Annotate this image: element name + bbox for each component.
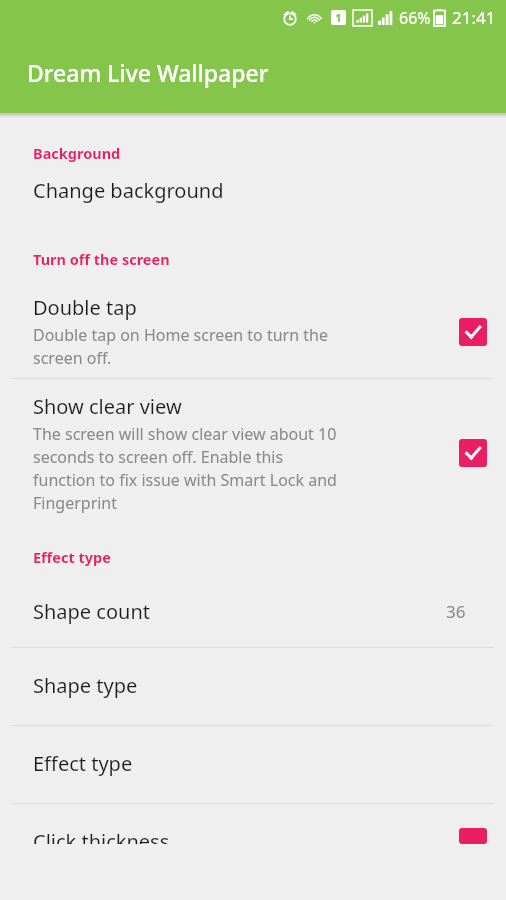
staticText: Change background (33, 177, 224, 204)
staticText: 66% (399, 7, 431, 29)
staticText: Shape count (33, 598, 150, 625)
staticText: Double tap on Home screen to turn the sc… (33, 324, 328, 369)
staticText: Show clear view (33, 393, 182, 420)
button[interactable]: Shape type (0, 648, 506, 725)
staticText: The screen will show clear view about 10… (33, 423, 337, 514)
staticText: 36 (446, 600, 466, 623)
staticText: Click thickness (33, 828, 459, 844)
staticText: Effect type (33, 547, 111, 567)
other: Toggle setting (459, 828, 487, 844)
button[interactable]: Click thickness (0, 804, 506, 844)
staticText: 1 (335, 10, 342, 25)
button[interactable]: Double tap (0, 285, 506, 378)
staticText: Effect type (33, 750, 133, 777)
staticText: Turn off the screen (33, 249, 170, 269)
button[interactable]: Effect type (0, 726, 506, 803)
staticText: Background (33, 143, 121, 163)
staticText: Dream Live Wallpaper (27, 57, 269, 88)
staticText: 21:41 (452, 6, 496, 29)
staticText: Double tap (33, 294, 137, 321)
button[interactable]: Toggle setting (459, 318, 487, 346)
button[interactable]: Show clear view (0, 379, 506, 527)
staticText: Shape type (33, 672, 138, 699)
button[interactable]: Change background (0, 163, 506, 224)
button[interactable]: Shape count (0, 581, 506, 647)
button[interactable]: Toggle setting (459, 439, 487, 467)
